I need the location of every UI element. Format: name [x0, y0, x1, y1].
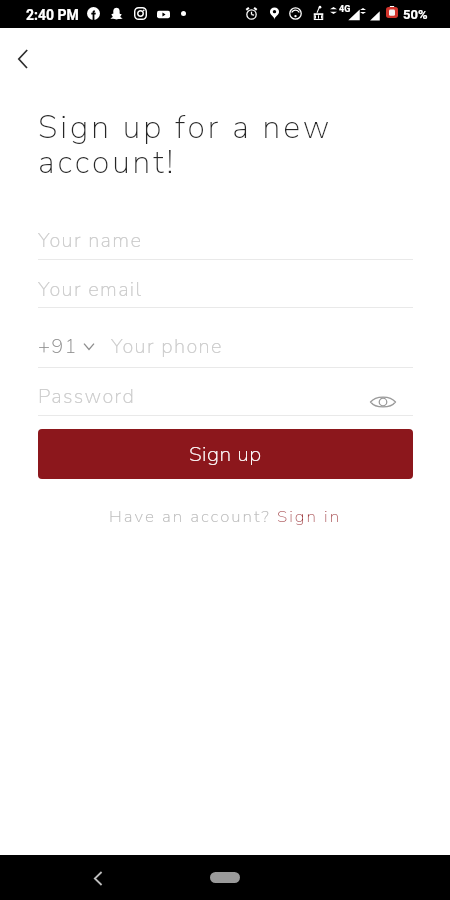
button[interactable]: Select country code — [38, 328, 413, 365]
button[interactable]: Back — [84, 864, 112, 892]
staticText: Sign up for a new account! — [38, 106, 338, 184]
staticText: Password — [38, 383, 136, 410]
staticText: Your phone — [111, 333, 223, 360]
staticText: Your name — [38, 227, 143, 254]
button[interactable]: Your name — [38, 222, 413, 259]
button[interactable]: Back — [9, 45, 37, 73]
button[interactable]: Home — [210, 872, 240, 883]
button[interactable]: Password — [38, 378, 413, 415]
staticText: 50% — [403, 7, 428, 22]
button[interactable]: Show password — [369, 388, 396, 415]
button[interactable]: Sign up — [38, 429, 413, 479]
staticText: 4G — [339, 4, 351, 15]
button[interactable]: Your email — [38, 271, 413, 308]
staticText: 2:40 PM — [26, 7, 79, 23]
staticText: Have an account? — [109, 505, 277, 528]
staticText: +91 — [38, 333, 78, 360]
button[interactable]: Select country code — [38, 333, 94, 360]
staticText: Sign up — [189, 440, 262, 469]
button[interactable]: Sign in — [277, 505, 342, 528]
staticText: Your email — [38, 276, 143, 303]
